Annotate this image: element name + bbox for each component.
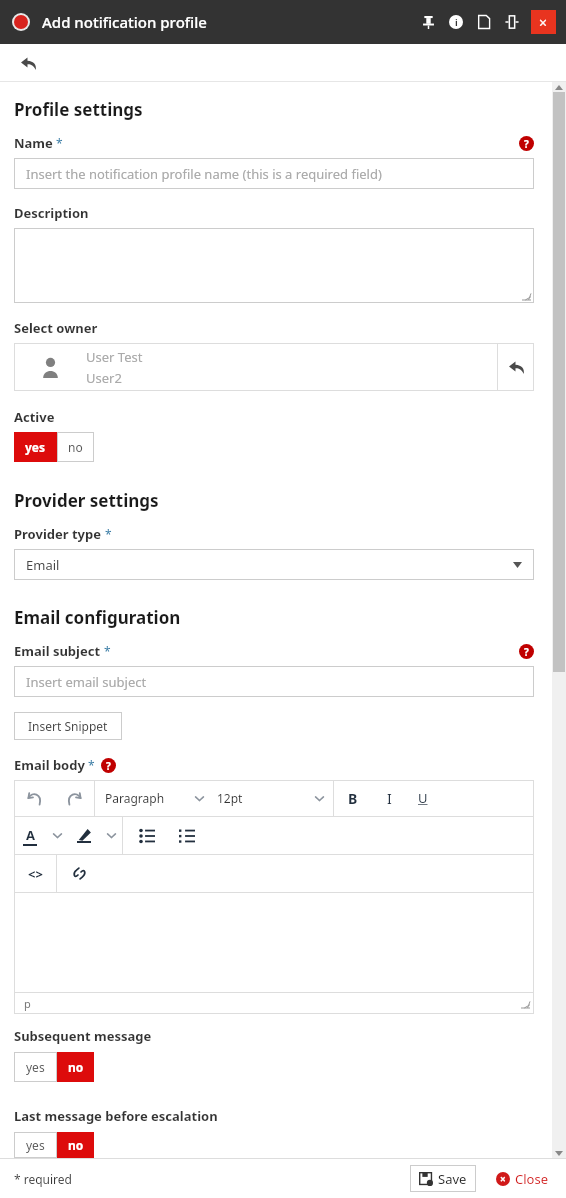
staticText: * bbox=[101, 643, 111, 659]
staticText: Email configuration bbox=[14, 606, 181, 629]
button[interactable]: Help bbox=[519, 644, 534, 659]
button[interactable]: Reset owner bbox=[498, 343, 534, 391]
staticText: no bbox=[68, 1059, 84, 1075]
button[interactable]: Toggle panel bbox=[501, 11, 523, 33]
staticText: Select owner bbox=[14, 319, 98, 337]
button[interactable]: Close window bbox=[531, 10, 556, 34]
button[interactable]: Export PDF bbox=[473, 11, 495, 33]
staticText: B bbox=[348, 789, 358, 808]
button[interactable]: Highlight options bbox=[100, 817, 122, 854]
staticText: Subsequent message bbox=[14, 1027, 152, 1045]
button[interactable]: Paragraph bbox=[95, 780, 213, 816]
button[interactable]: Email bbox=[14, 549, 534, 580]
button[interactable]: yes bbox=[14, 1132, 57, 1158]
staticText: Save bbox=[438, 1170, 467, 1188]
staticText: * required bbox=[14, 1171, 72, 1187]
button[interactable]: Insert Snippet bbox=[14, 712, 122, 740]
staticText: * bbox=[53, 135, 63, 151]
staticText: Insert the notification profile name (th… bbox=[26, 165, 382, 183]
staticText: yes bbox=[26, 1137, 45, 1153]
staticText: Active bbox=[14, 408, 55, 426]
button[interactable]: Bold bbox=[334, 780, 372, 816]
staticText: Insert Snippet bbox=[28, 718, 108, 734]
button[interactable]: User Test bbox=[14, 343, 534, 391]
staticText: * bbox=[85, 757, 95, 773]
staticText: Description bbox=[14, 204, 89, 222]
button[interactable]: Insert the notification profile name (th… bbox=[14, 158, 534, 189]
staticText: no bbox=[68, 439, 83, 455]
staticText: User Test bbox=[86, 348, 143, 366]
staticText: 12pt bbox=[217, 790, 314, 806]
button[interactable]: Help bbox=[101, 758, 116, 773]
staticText: × bbox=[539, 13, 548, 32]
staticText: Email subject bbox=[14, 642, 101, 660]
button[interactable]: Underline bbox=[406, 780, 440, 816]
button[interactable]: 12pt bbox=[213, 780, 333, 816]
button[interactable] bbox=[14, 228, 534, 303]
staticText: A bbox=[26, 826, 35, 844]
staticText: no bbox=[68, 1137, 84, 1153]
staticText: Name bbox=[14, 134, 53, 152]
button[interactable]: no bbox=[57, 1052, 94, 1082]
staticText: Close bbox=[515, 1170, 548, 1188]
staticText: Insert email subject bbox=[26, 673, 147, 691]
staticText: <> bbox=[28, 865, 43, 883]
button[interactable]: no bbox=[57, 432, 94, 462]
button[interactable]: Insert email subject bbox=[14, 666, 534, 697]
button[interactable]: no bbox=[57, 1132, 94, 1158]
button[interactable]: Save bbox=[410, 1165, 476, 1192]
staticText: Last message before escalation bbox=[14, 1107, 218, 1125]
button[interactable]: Bulleted list bbox=[127, 817, 167, 854]
button[interactable]: yes bbox=[14, 432, 57, 462]
button[interactable]: Information bbox=[445, 11, 467, 33]
staticText: Paragraph bbox=[105, 790, 194, 806]
staticText: yes bbox=[25, 439, 46, 455]
staticText: I bbox=[387, 789, 392, 808]
staticText: ? bbox=[524, 645, 529, 659]
staticText: ? bbox=[106, 759, 111, 773]
button[interactable]: Insert link bbox=[57, 855, 101, 892]
button[interactable]: Redo bbox=[54, 780, 94, 816]
staticText: i bbox=[455, 16, 458, 28]
button[interactable]: Help bbox=[519, 136, 534, 151]
staticText: Provider settings bbox=[14, 489, 159, 512]
button[interactable]: Italic bbox=[372, 780, 406, 816]
staticText: × bbox=[500, 1172, 506, 1186]
button[interactable]: Source code bbox=[14, 855, 56, 892]
staticText: Add notification profile bbox=[42, 12, 207, 32]
staticText: * bbox=[102, 526, 112, 542]
button[interactable]: Back bbox=[14, 49, 42, 77]
staticText: User2 bbox=[86, 369, 122, 387]
button[interactable]: Text color options bbox=[46, 817, 68, 854]
button[interactable]: yes bbox=[14, 1052, 57, 1082]
staticText: Email bbox=[26, 556, 513, 574]
button[interactable]: Pin bbox=[417, 11, 439, 33]
staticText: U bbox=[418, 789, 428, 807]
staticText: Email body bbox=[14, 756, 85, 774]
button[interactable]: Numbered list bbox=[167, 817, 207, 854]
staticText: p bbox=[24, 996, 521, 1011]
staticText: Profile settings bbox=[14, 98, 143, 121]
button[interactable]: Text color bbox=[14, 817, 46, 854]
staticText: yes bbox=[26, 1059, 45, 1075]
staticText: Provider type bbox=[14, 525, 102, 543]
button[interactable]: Highlight color bbox=[68, 817, 100, 854]
button[interactable]: × bbox=[492, 1165, 552, 1192]
staticText: ? bbox=[524, 137, 529, 151]
button[interactable]: Undo bbox=[14, 780, 54, 816]
